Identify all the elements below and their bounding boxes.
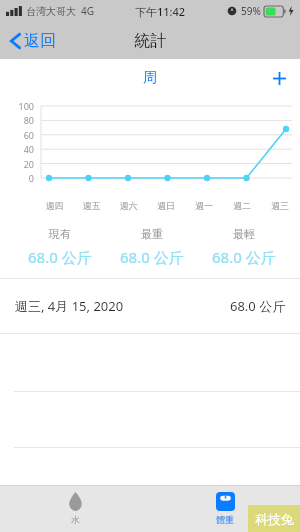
staticText: 週一	[185, 200, 223, 211]
staticText: 最重	[141, 227, 163, 241]
staticText: 現有	[49, 227, 71, 241]
staticText: 週二	[223, 200, 261, 211]
staticText: 80	[0, 114, 34, 126]
staticText: 科技兔	[255, 511, 294, 527]
button[interactable]: 水	[0, 485, 150, 532]
staticText: 68.0 公斤	[230, 297, 286, 315]
staticText: 68.0 公斤	[120, 247, 184, 267]
button[interactable]: 最重	[106, 227, 198, 267]
staticText: 統計	[134, 31, 166, 51]
staticText: 水	[71, 514, 80, 525]
staticText: 0	[0, 172, 34, 184]
staticText: 68.0 公斤	[212, 247, 276, 267]
staticText: 60	[0, 129, 34, 141]
staticText: 68.0 公斤	[28, 247, 92, 267]
staticText: 最輕	[233, 227, 255, 241]
staticText: 40	[0, 143, 34, 155]
button[interactable]: 體重	[150, 485, 300, 532]
staticText: 100	[0, 100, 34, 112]
staticText: 下午11:42	[135, 4, 186, 19]
staticText: 台湾大哥大	[26, 5, 76, 18]
staticText: 週三	[261, 200, 299, 211]
button[interactable]: Add entry	[268, 67, 290, 89]
staticText: 週五	[73, 200, 110, 211]
button[interactable]: 周	[143, 69, 157, 87]
staticText: 20	[0, 158, 34, 170]
staticText: 週六	[110, 200, 147, 211]
button[interactable]: 週三, 4月 15, 2020	[0, 279, 300, 333]
button[interactable]: 最輕	[198, 227, 290, 267]
button[interactable]: 返回	[7, 27, 59, 55]
staticText: 返回	[24, 31, 56, 51]
staticText: 週四	[36, 200, 73, 211]
staticText: 週日	[147, 200, 185, 211]
staticText: 週三, 4月 15, 2020	[15, 297, 124, 315]
staticText: 4G	[81, 4, 94, 18]
staticText: 59%	[241, 4, 261, 18]
staticText: 體重	[216, 514, 234, 525]
button[interactable]: 現有	[14, 227, 106, 267]
